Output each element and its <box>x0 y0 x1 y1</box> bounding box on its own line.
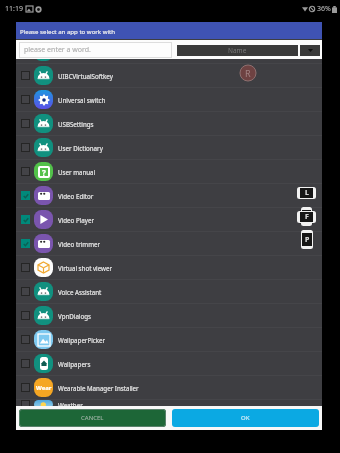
button[interactable]: User Dictionary <box>16 136 322 159</box>
button[interactable]: Wallpapers <box>16 352 322 375</box>
staticText: WallpaperPicker <box>58 336 106 344</box>
button[interactable]: Name <box>177 45 298 56</box>
button[interactable]: Universal switch <box>16 88 322 111</box>
button[interactable]: WallpaperPicker <box>16 328 322 351</box>
staticText: Please select an app to work with <box>20 27 116 35</box>
button[interactable]: please enter a word. <box>19 42 172 58</box>
staticText: Wallpapers <box>58 360 91 368</box>
button[interactable]: Video Editor <box>16 184 322 207</box>
button[interactable]: UIBCVirtualSoftkey <box>16 64 322 87</box>
button[interactable]: Sort order <box>300 45 320 56</box>
button[interactable]: Weather <box>16 400 322 409</box>
staticText: Video Editor <box>58 192 94 200</box>
staticText: Universal switch <box>58 96 106 104</box>
staticText: USBSettings <box>58 120 94 128</box>
staticText: CANCEL <box>81 414 104 422</box>
staticText: L <box>305 188 309 198</box>
button[interactable]: Landscape <box>297 187 316 199</box>
staticText: VpnDialogs <box>58 312 91 320</box>
staticText: ? <box>42 167 46 178</box>
button[interactable]: Voice Assistant <box>16 280 322 303</box>
button[interactable]: Wear <box>16 376 322 399</box>
button[interactable]: USBSettings <box>16 112 322 135</box>
button[interactable]: Video trimmer <box>16 232 322 255</box>
button[interactable]: Portrait <box>301 230 313 249</box>
staticText: Voice Assistant <box>58 288 102 296</box>
button[interactable]: CANCEL <box>19 409 166 427</box>
staticText: Weather <box>58 401 83 409</box>
staticText: UIBCVirtualSoftkey <box>58 72 113 80</box>
staticText: Virtual shot viewer <box>58 264 112 272</box>
staticText: R <box>245 67 251 79</box>
button[interactable]: Video Player <box>16 208 322 231</box>
staticText: OK <box>241 414 250 422</box>
button[interactable]: VpnDialogs <box>16 304 322 327</box>
button[interactable]: Auto rotate <box>297 207 316 226</box>
button[interactable]: ? <box>16 160 322 183</box>
staticText: User Dictionary <box>58 144 103 152</box>
button[interactable]: OK <box>172 409 319 427</box>
staticText: F <box>305 212 309 222</box>
staticText: Name <box>228 46 247 55</box>
staticText: Video trimmer <box>58 240 100 248</box>
staticText: P <box>305 235 310 245</box>
staticText: Wear <box>36 384 52 392</box>
staticText: Video Player <box>58 216 94 224</box>
staticText: Wearable Manager Installer <box>58 384 139 392</box>
staticText: please enter a word. <box>24 45 91 55</box>
staticText: 36% <box>317 4 331 14</box>
staticText: 11:19 <box>5 4 23 14</box>
button[interactable]: Typing booster <box>16 59 322 63</box>
staticText: User manual <box>58 168 96 176</box>
button[interactable]: Virtual shot viewer <box>16 256 322 279</box>
